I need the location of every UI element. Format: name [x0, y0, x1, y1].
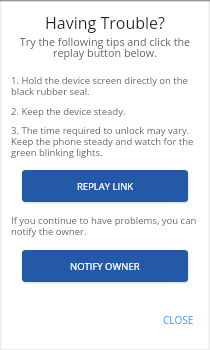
staticText: 2. Keep the device steady.	[11, 105, 198, 118]
staticText: NOTIFY OWNER	[70, 260, 140, 273]
button[interactable]: REPLAY LINK	[22, 170, 188, 202]
staticText: REPLAY LINK	[77, 180, 134, 193]
staticText: Try the following tips and click the rep…	[11, 34, 199, 60]
staticText: CLOSE	[163, 313, 194, 327]
staticText: 3. The time required to unlock may vary.…	[11, 124, 198, 158]
button[interactable]: CLOSE	[155, 305, 203, 335]
staticText: If you continue to have problems, you ca…	[11, 214, 198, 237]
button[interactable]: NOTIFY OWNER	[22, 250, 188, 282]
staticText: Having Trouble?	[0, 12, 210, 34]
staticText: 1. Hold the device screen directly on th…	[11, 74, 198, 97]
